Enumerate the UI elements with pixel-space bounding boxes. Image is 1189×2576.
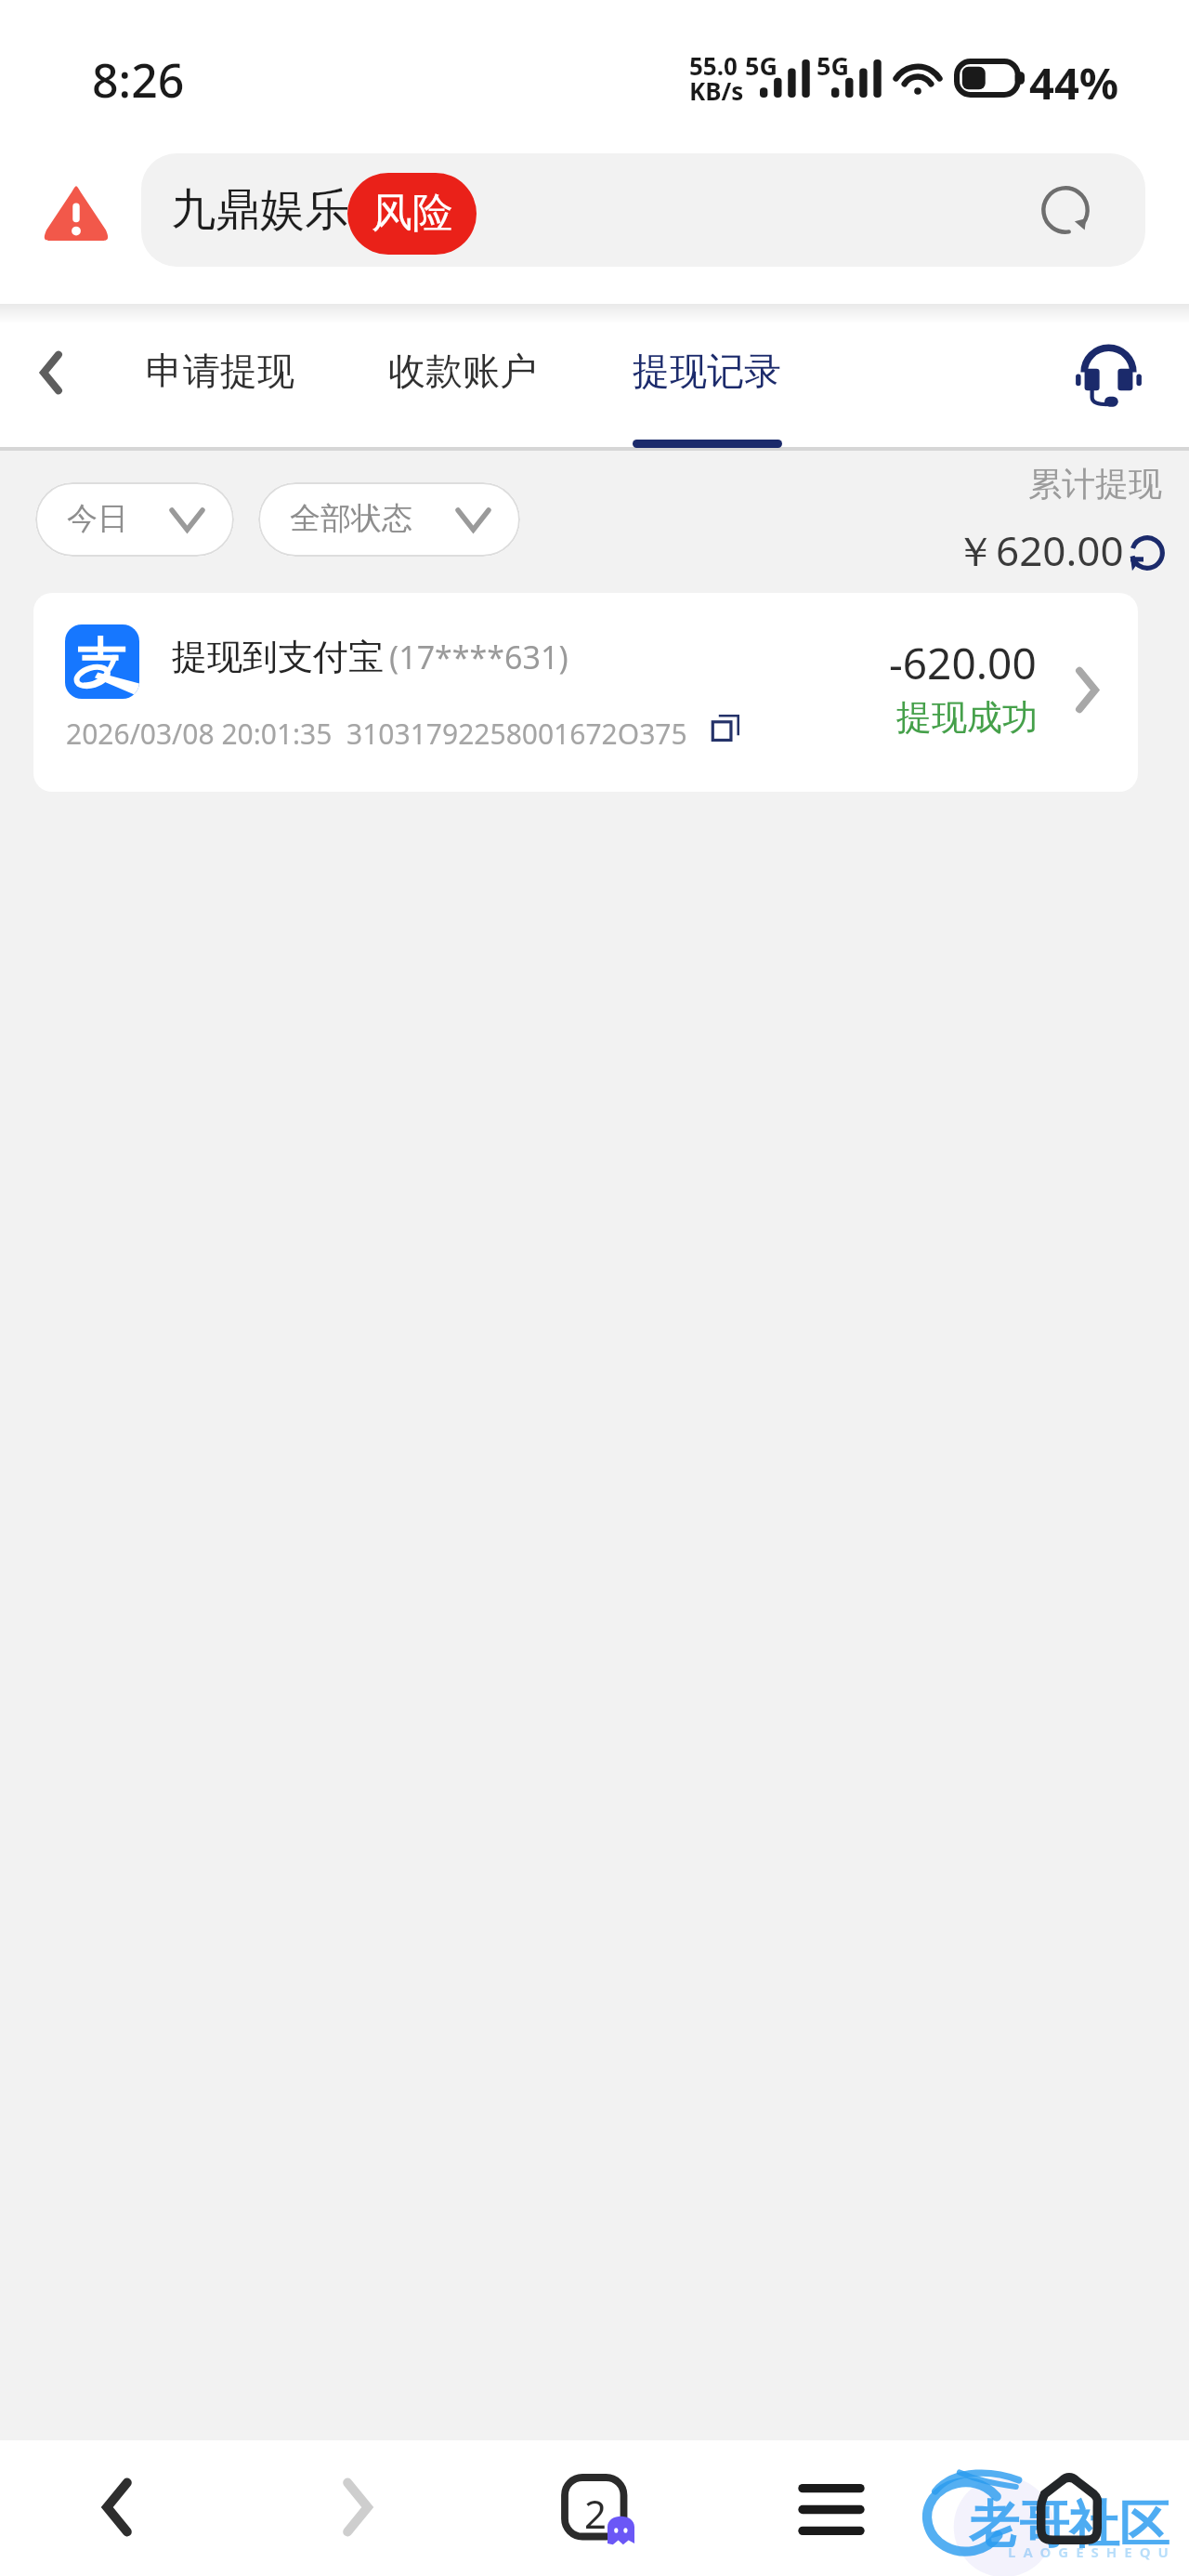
- button[interactable]: Back: [72, 2463, 162, 2552]
- staticText: 2: [584, 2487, 608, 2540]
- button[interactable]: Home: [1022, 2463, 1117, 2557]
- staticText: 8:26: [92, 48, 185, 112]
- staticText: 全部状态: [290, 499, 412, 538]
- staticText: 风险: [372, 188, 453, 239]
- button[interactable]: Back: [15, 336, 87, 409]
- staticText: 2026/03/08 20:01:35 31031792258001672O37…: [66, 715, 687, 753]
- button[interactable]: Forward: [313, 2463, 402, 2552]
- staticText: 申请提现: [146, 348, 294, 394]
- staticText: 老哥社区: [969, 2493, 1169, 2556]
- staticText: 九鼎娱乐: [171, 182, 349, 238]
- button[interactable]: Copy order id: [705, 708, 746, 749]
- staticText: 55.0: [689, 49, 738, 82]
- staticText: -620.00: [889, 634, 1037, 692]
- button[interactable]: Customer service: [1066, 335, 1150, 418]
- button[interactable]: Security warning: [37, 177, 115, 251]
- button[interactable]: 提现记录: [633, 325, 782, 447]
- button[interactable]: Menu: [787, 2464, 876, 2554]
- button[interactable]: 九鼎娱乐: [141, 153, 1145, 267]
- staticText: LAOGESHEQU: [1008, 2543, 1176, 2561]
- staticText: 今日: [67, 499, 128, 538]
- staticText: ￥620.00: [955, 522, 1124, 578]
- button[interactable]: 今日: [35, 482, 234, 557]
- button[interactable]: Refresh total: [1129, 534, 1165, 571]
- button[interactable]: 提现到支付宝: [33, 593, 1138, 792]
- button[interactable]: 收款账户: [388, 325, 537, 447]
- staticText: 累计提现: [1028, 463, 1162, 505]
- staticText: 5G: [745, 48, 777, 83]
- staticText: 44%: [1029, 53, 1119, 112]
- staticText: 收款账户: [388, 348, 537, 394]
- staticText: KB/s: [689, 74, 744, 107]
- staticText: 提现到支付宝: [172, 635, 384, 679]
- staticText: 提现成功: [896, 695, 1038, 740]
- button[interactable]: 全部状态: [258, 482, 520, 557]
- staticText: 5G: [817, 48, 849, 83]
- button[interactable]: Refresh page: [1033, 177, 1098, 243]
- staticText: 提现记录: [633, 348, 781, 394]
- button[interactable]: 申请提现: [146, 325, 294, 447]
- button[interactable]: Tabs: [554, 2464, 650, 2561]
- staticText: (17****631): [389, 636, 568, 678]
